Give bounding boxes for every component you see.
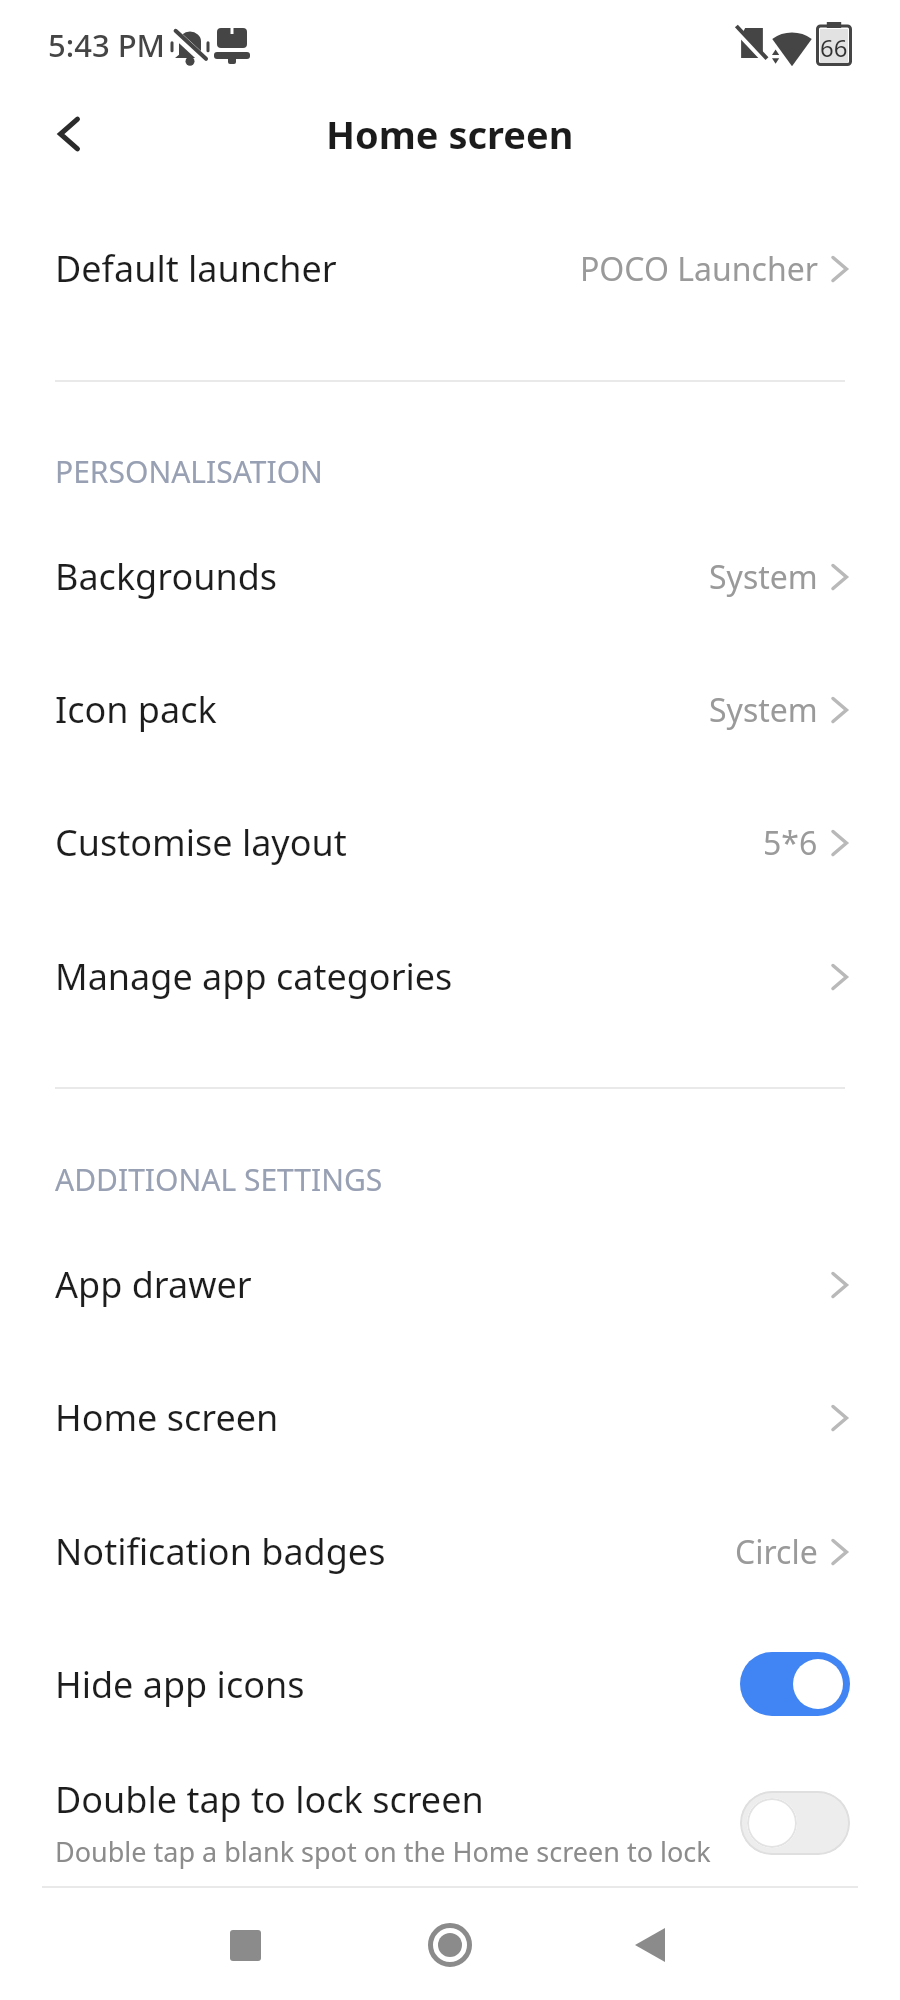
button[interactable]: Backgrounds <box>0 509 900 643</box>
button[interactable]: Hide app icons <box>0 1617 900 1751</box>
staticText: PERSONALISATION <box>55 451 323 492</box>
staticText: System <box>709 555 818 599</box>
button[interactable] <box>618 1913 682 1977</box>
staticText: Backgrounds <box>55 552 278 601</box>
staticText: Double tap to lock screen <box>55 1775 484 1824</box>
button[interactable]: Notification badges <box>0 1484 900 1618</box>
button[interactable]: Customise layout <box>0 775 900 909</box>
staticText: Home screen <box>55 1393 279 1442</box>
staticText: Notification badges <box>55 1527 386 1576</box>
button[interactable]: Default launcher <box>0 201 900 335</box>
button[interactable] <box>38 102 102 166</box>
button[interactable] <box>418 1913 482 1977</box>
staticText: Double tap a blank spot on the Home scre… <box>55 1833 711 1870</box>
button[interactable] <box>213 1913 277 1977</box>
staticText: App drawer <box>55 1260 252 1309</box>
staticText: Default launcher <box>55 244 337 293</box>
staticText: POCO Launcher <box>580 247 818 291</box>
staticText: Home screen <box>326 108 574 160</box>
button[interactable] <box>740 1652 850 1716</box>
staticText: Manage app categories <box>55 952 453 1001</box>
staticText: Circle <box>735 1530 818 1574</box>
button[interactable]: App drawer <box>0 1217 900 1351</box>
staticText: 5:43 PM <box>48 24 166 66</box>
staticText: System <box>709 688 818 732</box>
button[interactable] <box>740 1791 850 1855</box>
button[interactable]: Manage app categories <box>0 909 900 1043</box>
staticText: Icon pack <box>55 685 217 734</box>
button[interactable]: Home screen <box>0 1350 900 1484</box>
staticText: ADDITIONAL SETTINGS <box>55 1159 383 1200</box>
button[interactable]: Icon pack <box>0 642 900 776</box>
staticText: Hide app icons <box>55 1660 305 1709</box>
staticText: 66 <box>820 31 848 64</box>
button[interactable]: Double tap to lock screen <box>0 1755 900 1889</box>
staticText: 5*6 <box>763 821 818 865</box>
staticText: Customise layout <box>55 818 347 867</box>
